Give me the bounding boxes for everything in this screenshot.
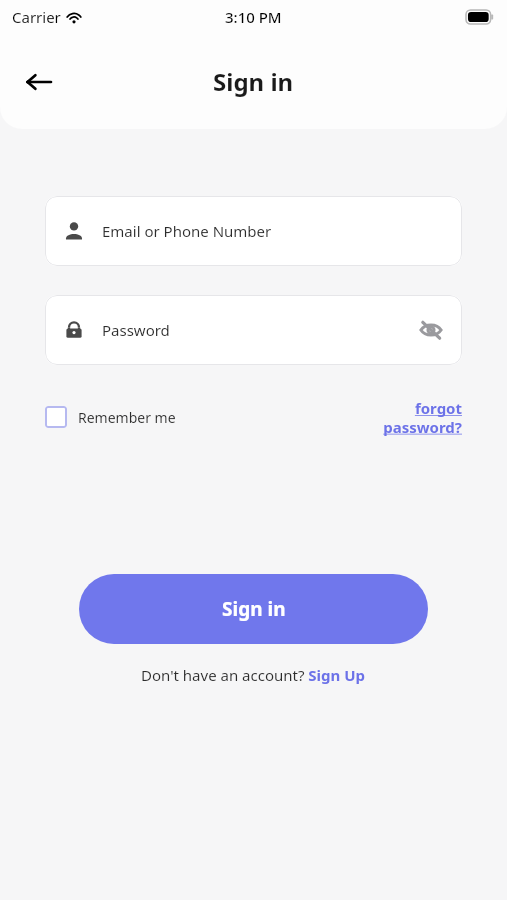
button[interactable]: Don't have an account? Sign Up — [141, 665, 366, 685]
staticText: 3:10 PM — [225, 7, 282, 27]
staticText: Email or Phone Number — [102, 221, 272, 241]
button[interactable]: Sign in — [79, 574, 428, 644]
button[interactable]: Remember me — [45, 406, 176, 428]
button[interactable]: Toggle password visibility — [418, 317, 444, 343]
staticText: Sign in — [222, 596, 286, 622]
staticText: forgot password? — [383, 398, 462, 437]
button[interactable]: forgot password? — [383, 398, 462, 437]
staticText: Carrier — [12, 7, 61, 27]
button[interactable]: Password — [45, 295, 462, 365]
staticText: Password — [102, 320, 170, 340]
button[interactable]: Email or Phone Number — [45, 196, 462, 266]
staticText: Remember me — [78, 408, 176, 427]
staticText: Don't have an account? Sign Up — [141, 665, 366, 685]
button[interactable]: Back — [16, 59, 62, 105]
staticText: Sign in — [213, 65, 294, 98]
